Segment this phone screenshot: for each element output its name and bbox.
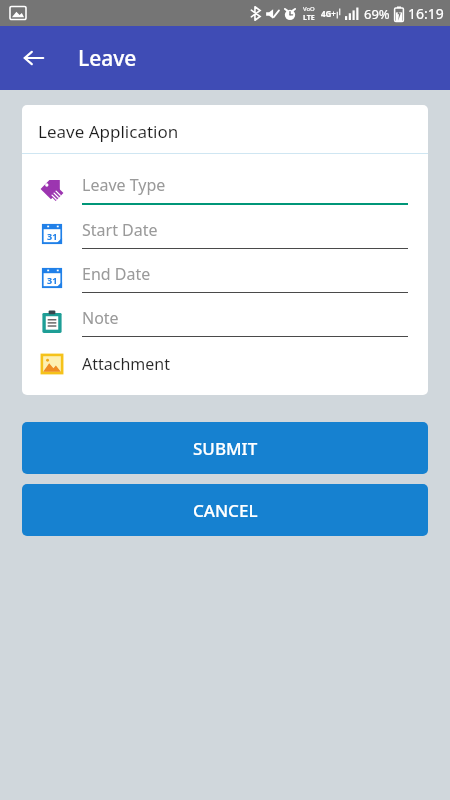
staticText: VoO bbox=[303, 5, 315, 13]
button[interactable]: Back bbox=[14, 38, 54, 78]
button[interactable]: Leave Type bbox=[22, 174, 428, 205]
button[interactable]: SUBMIT bbox=[22, 422, 428, 474]
button[interactable]: Note bbox=[22, 307, 428, 337]
staticText: Leave bbox=[78, 44, 137, 73]
staticText: SUBMIT bbox=[193, 437, 258, 460]
staticText: End Date bbox=[82, 263, 151, 285]
button[interactable]: Attachment bbox=[22, 351, 428, 377]
staticText: Attachment bbox=[82, 353, 170, 375]
button[interactable]: 31 bbox=[22, 219, 428, 249]
staticText: Start Date bbox=[82, 219, 158, 241]
button[interactable]: 31 bbox=[22, 263, 428, 293]
button[interactable]: CANCEL bbox=[22, 484, 428, 536]
staticText: 31 bbox=[47, 230, 58, 242]
staticText: LTE bbox=[303, 13, 315, 23]
staticText: CANCEL bbox=[193, 499, 258, 522]
staticText: 16:19 bbox=[408, 4, 444, 23]
staticText: Leave Type bbox=[82, 174, 166, 196]
staticText: 69% bbox=[364, 5, 390, 23]
staticText: 4G+ bbox=[321, 8, 336, 19]
staticText: 31 bbox=[47, 274, 58, 286]
staticText: Leave Application bbox=[38, 120, 179, 143]
staticText: Note bbox=[82, 307, 119, 329]
